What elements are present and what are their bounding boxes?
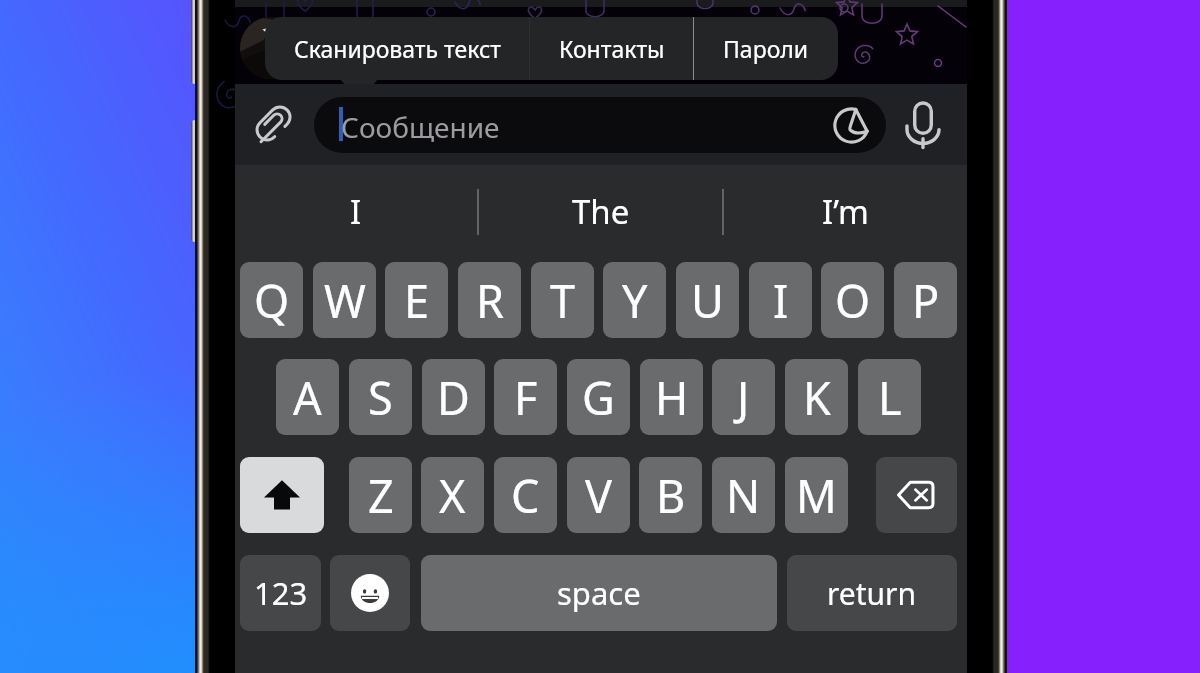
button[interactable]: R: [458, 262, 521, 338]
button[interactable]: space: [421, 555, 777, 631]
staticText: Пароли: [723, 33, 809, 64]
staticText: F: [514, 367, 538, 428]
button[interactable]: [876, 457, 957, 533]
staticText: C: [511, 465, 540, 526]
staticText: E: [404, 270, 430, 331]
staticText: U: [691, 270, 724, 331]
button[interactable]: L: [858, 359, 921, 435]
button[interactable]: K: [785, 359, 848, 435]
button[interactable]: J: [712, 359, 775, 435]
button[interactable]: return: [787, 555, 957, 631]
button[interactable]: I: [749, 262, 812, 338]
button[interactable]: O: [821, 262, 884, 338]
staticText: Сканировать текст: [294, 33, 501, 64]
staticText: Q: [254, 270, 290, 331]
button[interactable]: Q: [240, 262, 303, 338]
button[interactable]: Y: [603, 262, 666, 338]
staticText: L: [878, 367, 902, 428]
button[interactable]: Profile photo: [240, 17, 302, 79]
button[interactable]: Сообщение: [314, 97, 886, 153]
staticText: T: [550, 270, 576, 331]
button[interactable]: P: [894, 262, 957, 338]
button[interactable]: The: [479, 168, 722, 255]
staticText: P: [912, 270, 940, 331]
staticText: The: [572, 189, 630, 234]
button[interactable]: [330, 555, 410, 631]
button[interactable]: H: [640, 359, 703, 435]
staticText: Y: [622, 270, 648, 331]
button[interactable]: E: [385, 262, 448, 338]
button[interactable]: B: [639, 457, 702, 533]
staticText: space: [557, 572, 641, 614]
staticText: K: [803, 367, 831, 428]
staticText: Z: [368, 465, 394, 526]
button[interactable]: V: [567, 457, 630, 533]
button[interactable]: G: [567, 359, 630, 435]
button[interactable]: Контакты: [530, 17, 693, 80]
staticText: D: [437, 367, 470, 428]
button[interactable]: Z: [349, 457, 412, 533]
button[interactable]: T: [531, 262, 594, 338]
staticText: X: [439, 465, 466, 526]
button[interactable]: Сканировать текст: [265, 17, 529, 80]
button[interactable]: F: [494, 359, 557, 435]
button[interactable]: N: [712, 457, 775, 533]
staticText: H: [655, 367, 689, 428]
staticText: A: [293, 367, 322, 428]
staticText: 123: [254, 572, 308, 614]
button[interactable]: I: [235, 168, 477, 255]
button[interactable]: W: [313, 262, 376, 338]
staticText: G: [582, 367, 615, 428]
staticText: I: [773, 270, 789, 331]
staticText: B: [656, 465, 686, 526]
button[interactable]: A: [276, 359, 339, 435]
button[interactable]: D: [422, 359, 485, 435]
staticText: S: [368, 367, 393, 428]
button[interactable]: I’m: [724, 168, 967, 255]
staticText: return: [827, 573, 917, 614]
staticText: W: [324, 270, 366, 331]
button[interactable]: Attach file: [246, 95, 302, 151]
button[interactable]: C: [494, 457, 557, 533]
button[interactable]: Voice message: [895, 97, 951, 153]
staticText: O: [835, 270, 871, 331]
staticText: Контакты: [559, 33, 665, 64]
button[interactable]: Stickers: [828, 102, 874, 148]
button[interactable]: Пароли: [694, 17, 838, 80]
staticText: R: [476, 270, 504, 331]
staticText: M: [796, 465, 837, 526]
button[interactable]: [240, 457, 324, 533]
staticText: V: [585, 465, 613, 526]
button[interactable]: X: [421, 457, 484, 533]
staticText: Сообщение: [341, 108, 500, 146]
button[interactable]: M: [785, 457, 848, 533]
staticText: I’m: [822, 189, 869, 234]
staticText: I: [350, 189, 362, 234]
staticText: J: [737, 367, 750, 428]
button[interactable]: S: [349, 359, 412, 435]
button[interactable]: 123: [240, 555, 321, 631]
button[interactable]: U: [676, 262, 739, 338]
staticText: N: [726, 465, 761, 526]
